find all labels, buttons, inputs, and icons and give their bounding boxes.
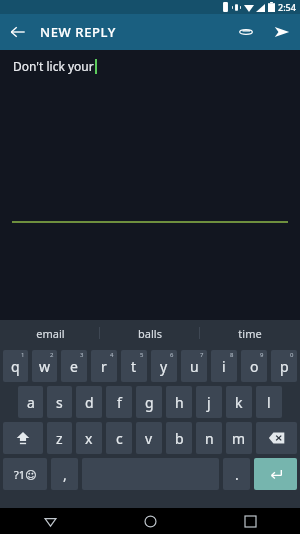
staticText: s [56, 393, 63, 412]
staticText: k [235, 393, 243, 412]
staticText: d [85, 393, 94, 412]
staticText: 6 [170, 351, 174, 359]
button[interactable]: Back [0, 14, 36, 50]
staticText: h [175, 393, 184, 412]
staticText: 7 [200, 351, 204, 359]
button[interactable]: o [241, 350, 267, 382]
staticText: balls [138, 326, 162, 341]
staticText: 8 [230, 351, 234, 359]
staticText: email [36, 326, 65, 341]
button[interactable]: d [76, 386, 102, 418]
button[interactable]: f [106, 386, 132, 418]
staticText: w [39, 357, 51, 376]
button[interactable]: r [91, 350, 117, 382]
staticText: g [145, 393, 154, 412]
staticText: z [56, 429, 63, 448]
staticText: 1 [21, 351, 25, 359]
button[interactable]: i [211, 350, 237, 382]
button[interactable]: p [271, 350, 297, 382]
staticText: e [70, 357, 78, 376]
button[interactable]: g [136, 386, 162, 418]
button[interactable]: Attach file [228, 14, 264, 50]
staticText: Don't lick your [13, 58, 94, 74]
button[interactable]: Home [100, 508, 200, 534]
staticText: a [27, 393, 35, 412]
button[interactable]: u [181, 350, 207, 382]
button[interactable]: c [106, 422, 132, 454]
button[interactable]: a [18, 386, 43, 418]
staticText: NEW REPLY [40, 23, 116, 41]
button[interactable]: Recent apps [200, 508, 300, 534]
button[interactable]: Send [264, 14, 300, 50]
staticText: j [207, 393, 211, 412]
button[interactable]: w [32, 350, 57, 382]
button[interactable]: ?1☺ [3, 458, 47, 490]
button[interactable]: b [166, 422, 192, 454]
staticText: p [280, 357, 289, 376]
button[interactable]: . [223, 458, 250, 490]
staticText: 2:54 [278, 1, 296, 13]
button[interactable]: h [166, 386, 192, 418]
staticText: 2 [50, 351, 54, 359]
button[interactable]: email [0, 320, 100, 346]
button[interactable]: k [226, 386, 252, 418]
button[interactable]: v [136, 422, 162, 454]
button[interactable]: j [196, 386, 222, 418]
button[interactable]: t [121, 350, 147, 382]
button[interactable]: Enter [254, 458, 297, 490]
staticText: 0 [290, 351, 294, 359]
staticText: time [238, 326, 262, 341]
staticText: t [131, 357, 137, 376]
staticText: l [267, 393, 271, 412]
button[interactable]: z [47, 422, 72, 454]
button[interactable]: y [151, 350, 177, 382]
button[interactable]: balls [100, 320, 200, 346]
button[interactable]: Backspace [256, 422, 297, 454]
staticText: 9 [260, 351, 264, 359]
staticText: y [160, 357, 168, 376]
button[interactable]: e [61, 350, 87, 382]
staticText: . [235, 465, 239, 484]
button[interactable]: Don't lick your [13, 58, 97, 74]
staticText: 4 [110, 351, 114, 359]
staticText: 5 [140, 351, 144, 359]
button[interactable]: Shift [3, 422, 43, 454]
button[interactable]: time [200, 320, 300, 346]
staticText: q [11, 357, 20, 376]
staticText: 3 [80, 351, 84, 359]
staticText: b [175, 429, 184, 448]
staticText: ?1☺ [14, 467, 37, 482]
staticText: m [232, 429, 246, 448]
staticText: n [205, 429, 214, 448]
staticText: , [63, 465, 67, 484]
button[interactable]: s [47, 386, 72, 418]
staticText: r [101, 357, 107, 376]
button[interactable]: x [76, 422, 102, 454]
staticText: f [117, 393, 122, 412]
staticText: c [116, 429, 123, 448]
staticText: v [145, 429, 153, 448]
button[interactable]: , [51, 458, 78, 490]
staticText: i [222, 357, 226, 376]
button[interactable]: q [3, 350, 28, 382]
button[interactable]: n [196, 422, 222, 454]
staticText: o [250, 357, 259, 376]
staticText: u [190, 357, 199, 376]
staticText: x [85, 429, 93, 448]
button[interactable]: Back [0, 508, 100, 534]
button[interactable]: m [226, 422, 252, 454]
button[interactable]: l [256, 386, 282, 418]
